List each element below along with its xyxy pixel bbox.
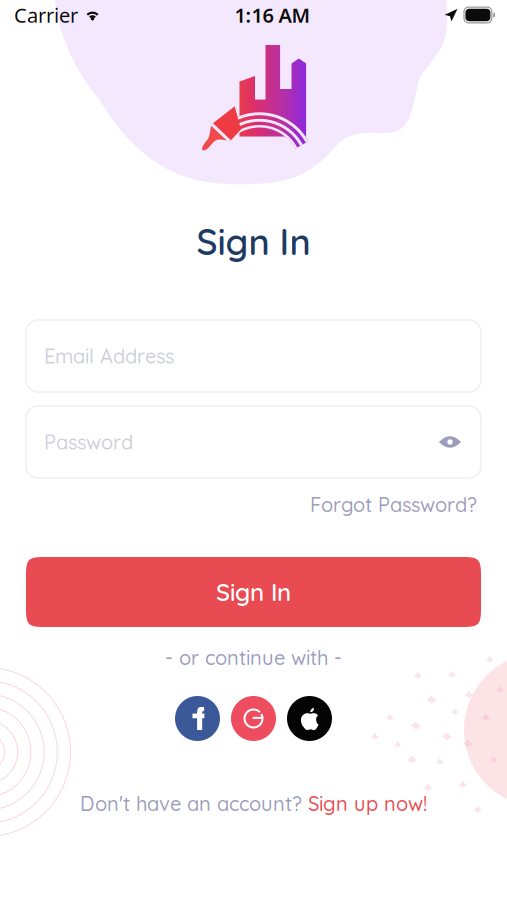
button[interactable]: Show password (437, 431, 463, 453)
button[interactable]: Sign In (26, 557, 481, 627)
staticText: Sign up now! (308, 791, 427, 816)
staticText: Sign In (216, 577, 291, 607)
button[interactable]: Sign in with Google (231, 696, 276, 741)
button[interactable]: Sign in with Apple (287, 696, 332, 741)
staticText: Carrier (14, 2, 78, 28)
staticText: 1:16 AM (234, 2, 310, 28)
staticText: - or continue with - (165, 645, 342, 670)
button[interactable]: Forgot Password? (310, 492, 477, 517)
button[interactable]: Sign in with Facebook (175, 696, 220, 741)
staticText: Forgot Password? (310, 492, 477, 517)
staticText: Don't have an account? (80, 791, 308, 816)
staticText: Password (44, 429, 133, 454)
staticText: Email Address (44, 343, 174, 368)
button[interactable]: Sign up now! (308, 791, 427, 816)
staticText: Sign In (196, 219, 310, 264)
